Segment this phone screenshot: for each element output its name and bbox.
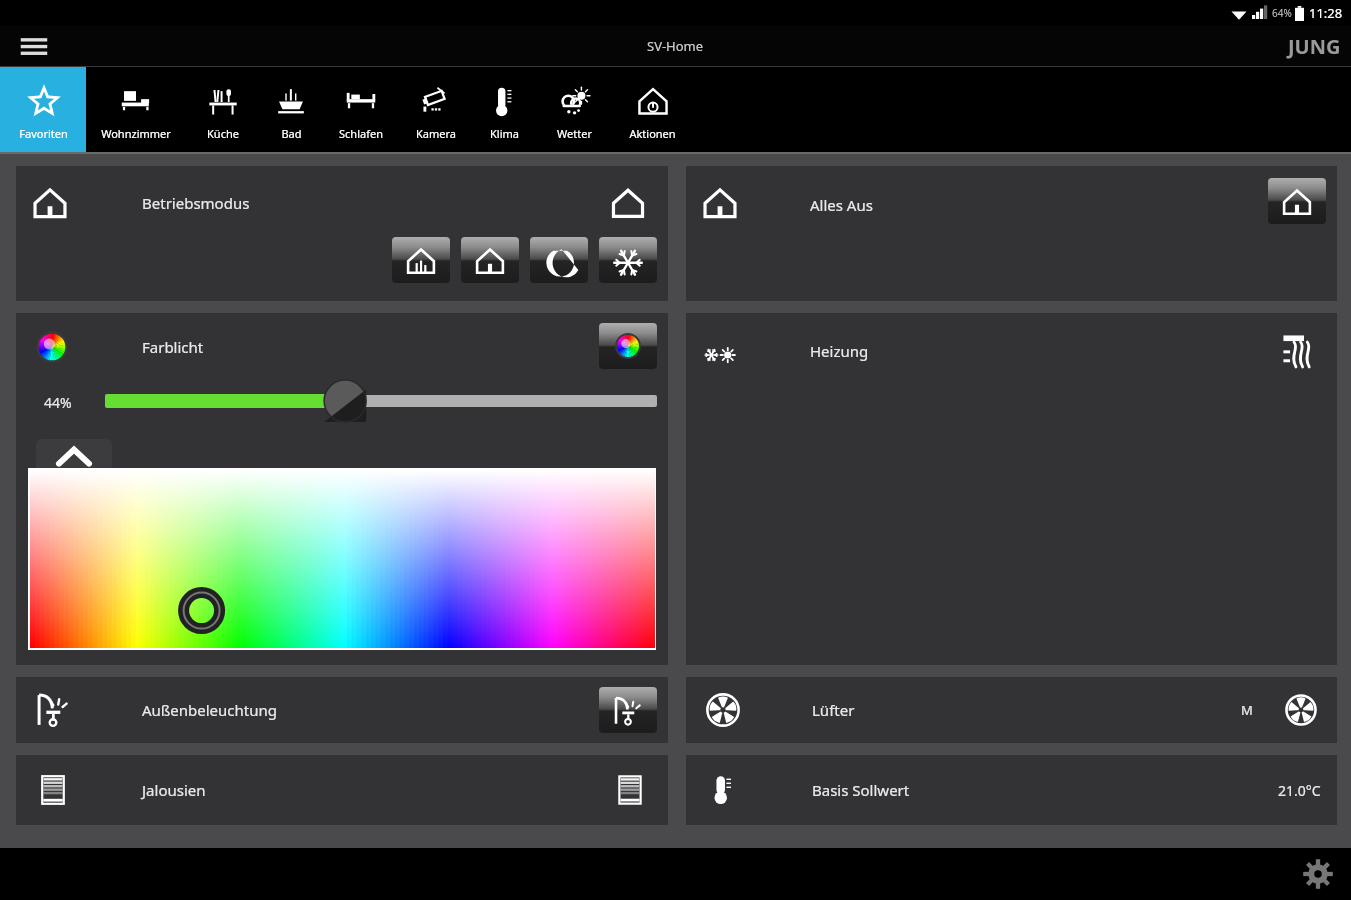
button[interactable]: Außenbeleuchtung schalten — [599, 687, 657, 733]
staticText: Wohnzimmer — [101, 126, 171, 141]
button[interactable]: Außenbeleuchtung — [16, 677, 668, 743]
button[interactable]: Heizung — [1277, 329, 1323, 375]
staticText: Farblicht — [142, 337, 204, 357]
staticText: Wetter — [557, 126, 592, 141]
button[interactable]: Favoriten — [0, 67, 86, 152]
button[interactable]: Schlafen — [322, 67, 400, 152]
staticText: Jalousien — [142, 780, 206, 800]
staticText: Außenbeleuchtung — [142, 700, 277, 720]
button[interactable]: Modus Nacht — [530, 237, 588, 283]
button[interactable]: Alles Aus schalten — [1268, 178, 1326, 224]
staticText: Aktionen — [629, 126, 676, 141]
button[interactable]: Wetter — [536, 67, 612, 152]
staticText: M — [1241, 701, 1253, 719]
staticText: JUNG — [1288, 33, 1341, 60]
staticText: Lüfter — [812, 700, 855, 720]
staticText: Betriebsmodus — [142, 193, 250, 213]
button[interactable]: Modus Komfort — [392, 237, 450, 283]
button[interactable]: Lüfter — [686, 677, 1337, 743]
button[interactable]: Aktionen — [612, 67, 692, 152]
button[interactable]: Einklappen — [36, 439, 112, 469]
staticText: Heizung — [810, 341, 869, 361]
button[interactable]: Modus Frostschutz — [599, 237, 657, 283]
button[interactable]: Einstellungen — [1299, 855, 1337, 893]
button[interactable]: Basis Sollwert — [686, 755, 1337, 825]
button[interactable]: Jalousien — [16, 755, 668, 825]
button[interactable]: Betriebsmodus Status — [606, 182, 650, 226]
button[interactable]: Wohnzimmer — [86, 67, 186, 152]
staticText: Favoriten — [19, 126, 68, 141]
staticText: Bad — [281, 126, 302, 141]
staticText: Küche — [207, 126, 239, 141]
button[interactable] — [86, 375, 662, 427]
staticText: Klima — [490, 126, 519, 141]
button[interactable] — [30, 470, 654, 648]
staticText: 44% — [44, 393, 72, 412]
button[interactable]: Modus Standby — [461, 237, 519, 283]
staticText: 11:28 — [1309, 4, 1343, 22]
button[interactable]: Kamera — [400, 67, 472, 152]
button[interactable]: Küche — [186, 67, 260, 152]
button[interactable]: Menu — [18, 32, 52, 60]
staticText: 64% — [1272, 6, 1292, 20]
button[interactable]: Farblicht öffnen — [599, 323, 657, 369]
button[interactable]: Bad — [260, 67, 322, 152]
staticText: Basis Sollwert — [812, 780, 910, 800]
staticText: 21.0°C — [1278, 781, 1321, 800]
staticText: Kamera — [416, 126, 456, 141]
staticText: Alles Aus — [810, 195, 873, 215]
staticText: SV-Home — [647, 37, 704, 55]
staticText: Schlafen — [339, 126, 383, 141]
button[interactable]: Klima — [472, 67, 536, 152]
